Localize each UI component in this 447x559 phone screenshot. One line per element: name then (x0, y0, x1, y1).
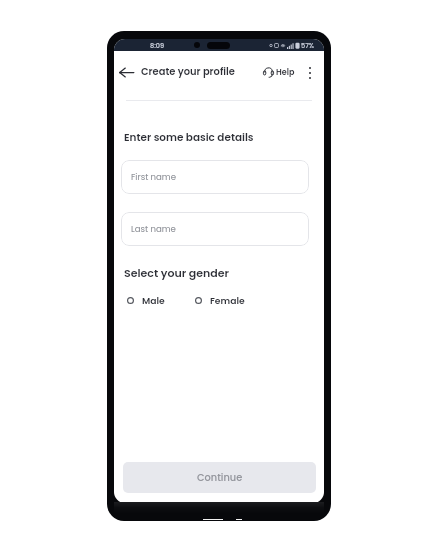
button[interactable]: More options (303, 66, 317, 80)
staticText: Continue (197, 471, 243, 485)
staticText: Last name (131, 223, 176, 235)
button[interactable]: Help (263, 64, 295, 81)
button[interactable]: Last name (121, 212, 309, 246)
button[interactable]: First name (121, 160, 309, 194)
staticText: Male (142, 294, 165, 307)
staticText: Enter some basic details (124, 130, 254, 145)
staticText: Female (210, 294, 245, 307)
staticText: 8:09 (150, 41, 165, 50)
button[interactable]: Male (127, 294, 165, 307)
staticText: Create your profile (141, 65, 235, 79)
button[interactable]: Back (116, 62, 136, 82)
staticText: 57% (301, 41, 314, 50)
staticText: Select your gender (124, 265, 230, 280)
staticText: First name (131, 171, 177, 183)
button[interactable]: Continue (123, 462, 316, 493)
button[interactable]: Female (195, 294, 245, 307)
staticText: Help (276, 67, 295, 78)
